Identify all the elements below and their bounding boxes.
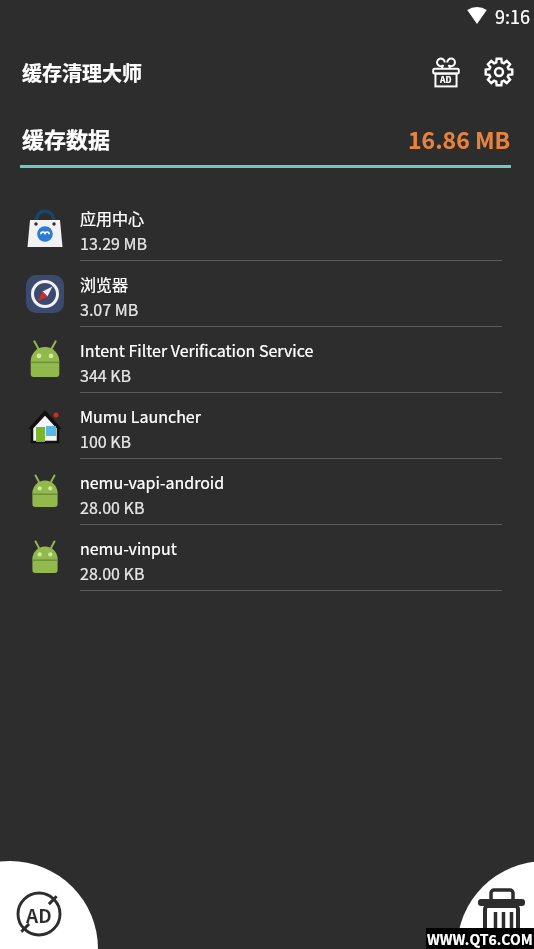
button[interactable] xyxy=(0,854,95,949)
staticText: 13.29 MB xyxy=(80,231,148,254)
button[interactable]: 应用中心 xyxy=(0,195,534,261)
staticText: 应用中心 xyxy=(80,206,145,229)
button[interactable]: Mumu Launcher xyxy=(0,393,534,459)
staticText: 344 KB xyxy=(80,363,132,386)
staticText: 3.07 MB xyxy=(80,297,139,320)
staticText: AD xyxy=(440,73,452,85)
staticText: 16.86 MB xyxy=(408,122,511,155)
staticText: 100 KB xyxy=(80,429,132,452)
button[interactable]: 浏览器 xyxy=(0,261,534,327)
staticText: 缓存数据 xyxy=(22,122,111,154)
button[interactable] xyxy=(484,57,514,87)
button[interactable]: nemu-vinput xyxy=(0,525,534,591)
staticText: 28.00 KB xyxy=(80,495,145,518)
button[interactable]: nemu-vapi-android xyxy=(0,459,534,525)
staticText: 浏览器 xyxy=(80,272,129,295)
staticText: Mumu Launcher xyxy=(80,404,201,427)
staticText: 9:16 xyxy=(495,3,530,29)
staticText: nemu-vapi-android xyxy=(80,470,225,493)
button[interactable]: AD xyxy=(430,56,462,88)
staticText: 缓存清理大师 xyxy=(22,58,142,87)
staticText: Intent Filter Verification Service xyxy=(80,338,314,361)
button[interactable]: Intent Filter Verification Service xyxy=(0,327,534,393)
button[interactable] xyxy=(439,854,534,949)
staticText: WWW.QT6.COM xyxy=(427,929,533,949)
staticText: nemu-vinput xyxy=(80,536,177,559)
staticText: 28.00 KB xyxy=(80,561,145,584)
staticText: AD xyxy=(26,901,52,929)
